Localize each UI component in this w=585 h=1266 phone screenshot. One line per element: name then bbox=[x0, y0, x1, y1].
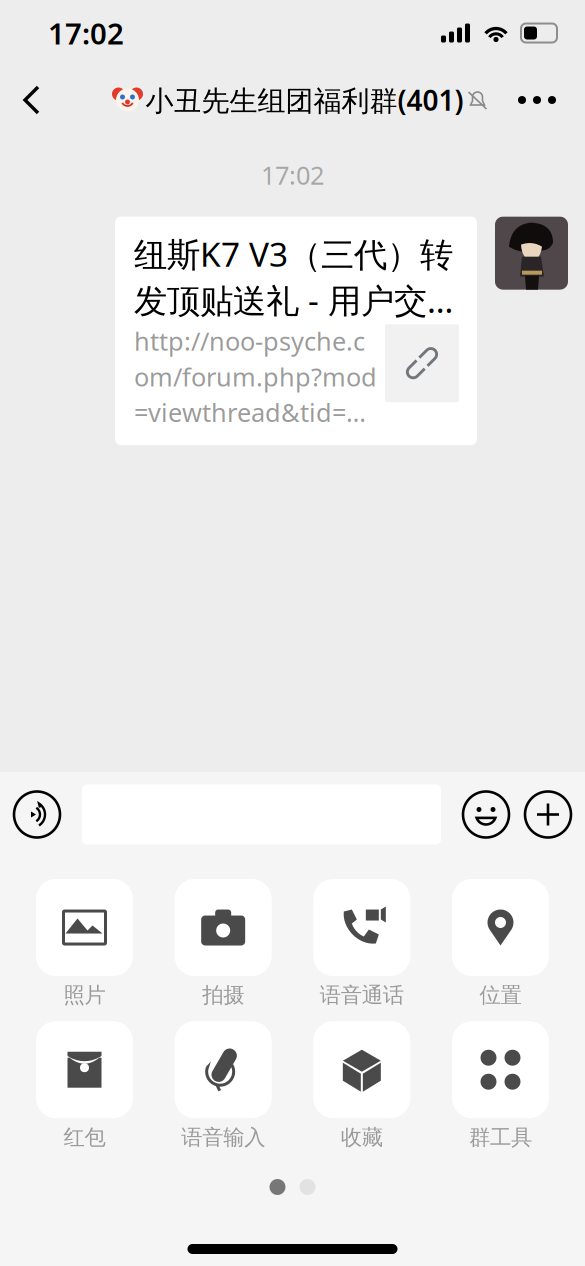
button[interactable]: Emoji bbox=[463, 791, 509, 837]
button[interactable]: 拍摄 bbox=[175, 879, 272, 1008]
staticText: om/forum.php?mod bbox=[134, 360, 377, 393]
staticText: 语音通话 bbox=[320, 982, 404, 1008]
staticText: 发顶贴送礼 - 用户交… bbox=[134, 278, 453, 322]
button[interactable]: 群工具 bbox=[452, 1021, 549, 1150]
button[interactable]: 语音输入 bbox=[175, 1021, 272, 1150]
button[interactable]: More options bbox=[525, 791, 571, 837]
button[interactable]: Voice input bbox=[14, 791, 60, 837]
staticText: 照片 bbox=[63, 982, 105, 1008]
staticText: 小丑先生组团福利群(401) bbox=[145, 81, 463, 119]
staticText: 位置 bbox=[479, 982, 521, 1008]
staticText: 17:02 bbox=[261, 158, 324, 192]
staticText: 语音输入 bbox=[181, 1124, 265, 1150]
button[interactable]: 红包 bbox=[36, 1021, 133, 1150]
button[interactable]: 位置 bbox=[452, 879, 549, 1008]
button[interactable]: 语音通话 bbox=[313, 879, 410, 1008]
staticText: 红包 bbox=[63, 1124, 105, 1150]
button[interactable]: More bbox=[499, 70, 575, 130]
staticText: 群工具 bbox=[469, 1124, 532, 1150]
button[interactable]: 照片 bbox=[36, 879, 133, 1008]
staticText: 纽斯K7 V3（三代）转 bbox=[134, 232, 453, 276]
staticText: http://noo-psyche.c bbox=[134, 324, 365, 358]
staticText: 拍摄 bbox=[202, 982, 244, 1008]
button[interactable]: 收藏 bbox=[313, 1021, 410, 1150]
staticText: 收藏 bbox=[341, 1124, 383, 1150]
staticText: =viewthread&tid=… bbox=[134, 395, 366, 429]
staticText: 17:02 bbox=[48, 13, 124, 52]
